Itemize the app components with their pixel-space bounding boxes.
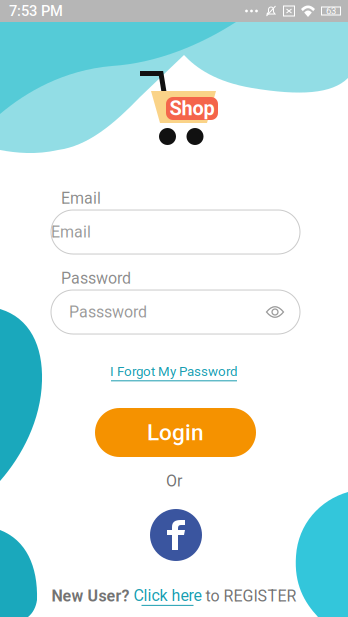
staticText: 7:53 PM bbox=[9, 2, 63, 20]
button[interactable]: Sign in with Facebook bbox=[150, 509, 202, 561]
staticText: Login bbox=[147, 419, 204, 446]
staticText: New User? bbox=[51, 587, 133, 605]
staticText: 63 bbox=[326, 5, 336, 16]
staticText: Passsword bbox=[69, 303, 147, 321]
button[interactable]: Login bbox=[95, 408, 256, 457]
button[interactable]: I Forgot My Password bbox=[109, 364, 239, 381]
staticText: Password bbox=[61, 269, 131, 288]
staticText: I Forgot My Password bbox=[110, 364, 238, 379]
staticText: to REGISTER bbox=[201, 587, 296, 605]
staticText: Or bbox=[166, 472, 182, 490]
button[interactable]: Click here bbox=[133, 586, 201, 606]
staticText: Email bbox=[51, 223, 91, 241]
staticText: Shop bbox=[169, 97, 214, 120]
staticText: Email bbox=[61, 189, 101, 208]
staticText: Click here bbox=[133, 586, 201, 605]
